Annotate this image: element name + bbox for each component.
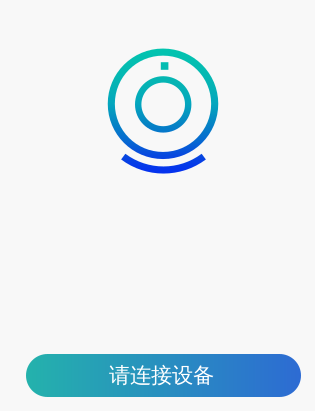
staticText: 请连接设备 bbox=[109, 362, 214, 389]
button[interactable]: 请连接设备 bbox=[26, 354, 301, 397]
